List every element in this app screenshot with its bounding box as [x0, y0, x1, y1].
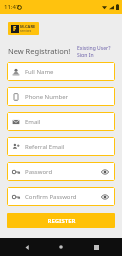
staticText: Phone Number [25, 93, 110, 101]
button[interactable]: Existing User? Sign In [77, 43, 114, 59]
button[interactable]: Show password [100, 192, 110, 202]
staticText: 11:47 [4, 3, 20, 11]
button[interactable]: Home [53, 239, 69, 255]
staticText: New Registration! [8, 46, 71, 56]
button[interactable]: Phone Number [7, 87, 115, 106]
button[interactable]: REGISTER [7, 213, 115, 228]
button[interactable]: Show password [100, 167, 110, 177]
button[interactable]: Full Name [7, 62, 115, 81]
button[interactable]: Email [7, 112, 115, 131]
button[interactable]: F [8, 22, 39, 35]
button[interactable]: Confirm Password [7, 187, 115, 206]
staticText: services [20, 29, 32, 33]
button[interactable]: Recent apps [88, 239, 104, 255]
button[interactable]: Password [7, 162, 115, 181]
staticText: REGISTER [47, 217, 76, 225]
staticText: M-CARE [20, 24, 36, 29]
staticText: Full Name [25, 68, 110, 76]
staticText: Existing User? Sign In [77, 45, 114, 57]
staticText: Password [25, 168, 100, 176]
button[interactable]: Back [19, 239, 35, 255]
staticText: Confirm Password [25, 193, 100, 201]
staticText: F [13, 25, 17, 33]
staticText: Referral Email [25, 143, 110, 151]
button[interactable]: Referral Email [7, 137, 115, 156]
staticText: Email [25, 118, 110, 126]
